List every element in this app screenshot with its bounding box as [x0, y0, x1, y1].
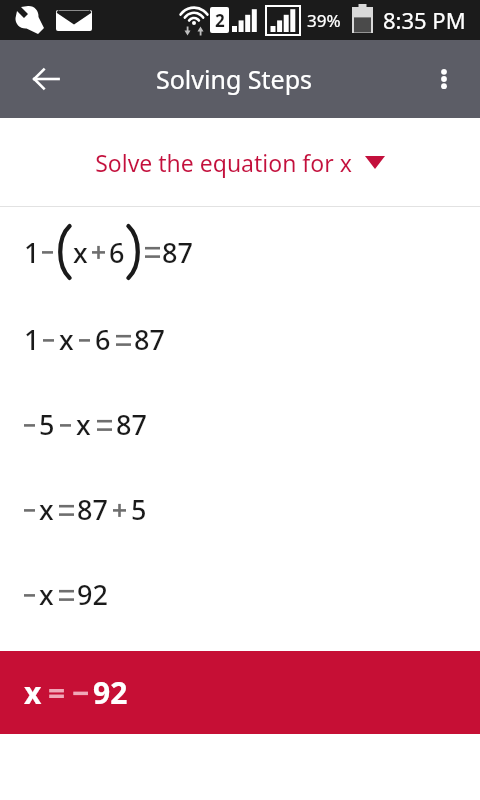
- button[interactable]: 1: [0, 297, 480, 382]
- staticText: x: [39, 576, 54, 613]
- staticText: 87: [162, 234, 193, 271]
- staticText: 1: [24, 321, 40, 358]
- staticText: 87: [77, 491, 108, 528]
- staticText: Solving Steps: [156, 62, 312, 96]
- button[interactable]: Back: [18, 51, 74, 107]
- staticText: 2: [215, 9, 225, 32]
- staticText: x: [59, 321, 74, 358]
- staticText: 87: [116, 406, 147, 443]
- staticText: 6: [109, 234, 125, 271]
- button[interactable]: 5: [0, 382, 480, 467]
- button[interactable]: x: [0, 552, 480, 637]
- staticText: 8:35 PM: [383, 5, 466, 35]
- staticText: 1: [24, 234, 40, 271]
- staticText: Solve the equation for x: [95, 147, 352, 178]
- staticText: x: [73, 234, 88, 271]
- button[interactable]: More options: [417, 52, 471, 106]
- button[interactable]: 1: [0, 207, 480, 297]
- staticText: x: [24, 672, 42, 713]
- staticText: 5: [39, 406, 55, 443]
- staticText: 92: [93, 672, 128, 713]
- button[interactable]: x: [0, 467, 480, 552]
- staticText: x: [39, 491, 54, 528]
- staticText: =: [48, 672, 66, 713]
- staticText: 39%: [307, 9, 341, 32]
- staticText: 6: [95, 321, 111, 358]
- staticText: 5: [131, 491, 147, 528]
- staticText: x: [76, 406, 91, 443]
- staticText: 92: [77, 576, 108, 613]
- staticText: −: [72, 672, 90, 713]
- button[interactable]: Solve the equation for x: [0, 118, 480, 206]
- button[interactable]: x: [0, 651, 480, 734]
- staticText: 87: [134, 321, 165, 358]
